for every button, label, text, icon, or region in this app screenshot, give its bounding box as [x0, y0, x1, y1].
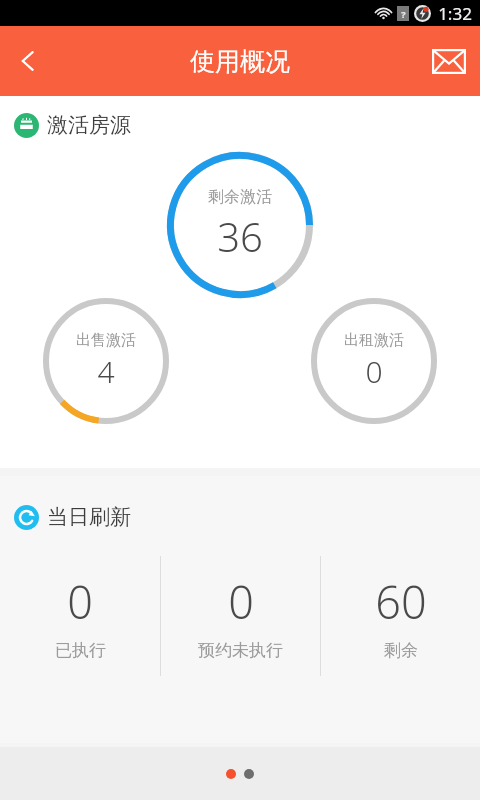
staticText: 0: [365, 351, 383, 392]
staticText: 60: [375, 571, 427, 632]
staticText: 4: [97, 351, 115, 392]
button[interactable]: 60: [321, 556, 480, 676]
button[interactable]: Messages: [418, 30, 480, 92]
button[interactable]: 0: [0, 556, 160, 676]
staticText: 0: [67, 571, 93, 632]
staticText: 剩余: [384, 640, 418, 661]
staticText: 出售激活: [76, 331, 136, 350]
button[interactable]: Back: [0, 33, 56, 89]
button[interactable]: 出租激活: [311, 298, 437, 424]
staticText: 激活房源: [47, 112, 131, 138]
staticText: ?: [401, 8, 406, 20]
button[interactable]: 剩余激活: [167, 152, 313, 298]
staticText: 36: [217, 209, 263, 263]
staticText: 当日刷新: [47, 504, 131, 530]
staticText: 0: [228, 571, 254, 632]
staticText: 已执行: [55, 640, 106, 661]
button[interactable]: 出售激活: [43, 298, 169, 424]
staticText: 剩余激活: [208, 187, 272, 207]
staticText: 1:32: [438, 2, 472, 25]
button[interactable]: 0: [161, 556, 320, 676]
staticText: 出租激活: [344, 331, 404, 350]
staticText: 使用概况: [190, 46, 290, 77]
staticText: 预约未执行: [198, 640, 283, 661]
